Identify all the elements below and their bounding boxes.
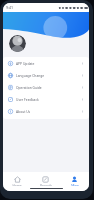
button[interactable]: Profile photo [9, 35, 26, 52]
button[interactable]: Operation Guide [3, 81, 89, 93]
button[interactable]: Home [3, 176, 31, 186]
staticText: Records [40, 184, 52, 186]
staticText: Operation Guide [16, 85, 42, 89]
staticText: Language Change [16, 73, 45, 77]
button[interactable]: About Us [3, 105, 89, 117]
button[interactable]: Language Change [3, 69, 89, 81]
button[interactable]: APP Update [3, 57, 89, 69]
staticText: 9:41 [6, 5, 14, 10]
button[interactable]: Mine [60, 176, 89, 186]
staticText: Mine [71, 184, 79, 186]
button[interactable]: User Feedback [3, 93, 89, 105]
staticText: About Us [16, 109, 31, 113]
staticText: Home [12, 184, 22, 186]
button[interactable]: Records [31, 176, 60, 186]
staticText: APP Update [16, 61, 35, 65]
staticText: User Feedback [16, 97, 39, 101]
